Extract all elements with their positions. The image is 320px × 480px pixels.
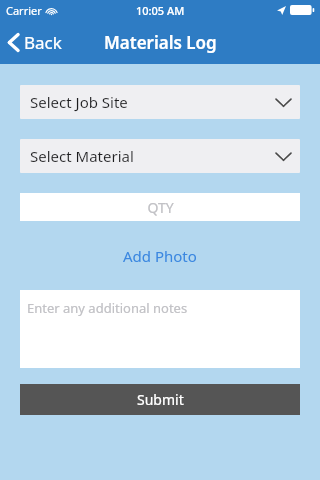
staticText: Materials Log [104,31,217,54]
button[interactable]: Add Photo [111,243,209,269]
button[interactable]: QTY [20,193,300,221]
button[interactable]: Select Job Site [20,85,300,119]
button[interactable]: Back [0,25,72,60]
button[interactable]: Enter any additional notes [20,290,300,368]
staticText: Carrier [6,3,42,18]
staticText: Select Material [30,146,134,166]
button[interactable]: Submit [20,384,300,415]
staticText: Add Photo [123,246,197,266]
staticText: 10:05 AM [136,3,185,18]
staticText: Enter any additional notes [27,299,188,317]
staticText: Submit [137,390,184,409]
button[interactable]: Select Material [20,139,300,173]
staticText: Back [24,31,62,54]
staticText: Select Job Site [30,92,128,112]
staticText: QTY [147,198,174,217]
